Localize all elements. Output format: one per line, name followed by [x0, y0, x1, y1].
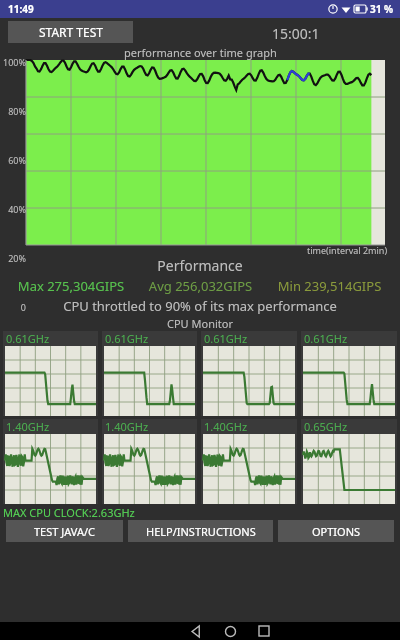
staticText: 0.61GHz [204, 331, 248, 346]
button[interactable]: HELP/INSTRUCTIONS [128, 520, 273, 542]
staticText: HELP/INSTRUCTIONS [146, 524, 256, 539]
staticText: 15:00:1 [272, 24, 320, 43]
staticText: START TEST [39, 24, 103, 40]
staticText: time(interval 2min) [307, 244, 388, 256]
button[interactable]: TEST JAVA/C [6, 520, 123, 542]
staticText: 80% [2, 105, 26, 117]
staticText: 1.40GHz [105, 419, 149, 434]
staticText: CPU Monitor [167, 316, 233, 331]
staticText: performance over time graph [124, 45, 277, 60]
staticText: 31 % [370, 2, 394, 16]
staticText: 0.61GHz [6, 331, 50, 346]
staticText: MAX CPU CLOCK:2.63GHz [3, 505, 135, 520]
button[interactable]: START TEST [8, 21, 133, 43]
staticText: 60% [2, 154, 26, 166]
staticText: 0 [2, 301, 26, 313]
staticText: TEST JAVA/C [34, 524, 96, 539]
staticText: Performance [0, 256, 400, 275]
staticText: CPU throttled to 90% of its max performa… [0, 297, 400, 315]
staticText: Avg 256,032GIPS [136, 277, 265, 295]
button[interactable]: Recents [247, 622, 281, 640]
staticText: Max 275,304GIPS [6, 277, 136, 295]
staticText: 40% [2, 203, 26, 215]
button[interactable]: Home [213, 622, 247, 640]
button[interactable]: OPTIONS [278, 520, 394, 542]
staticText: 100% [2, 56, 26, 68]
staticText: OPTIONS [312, 524, 361, 539]
staticText: Min 239,514GIPS [265, 277, 394, 295]
staticText: 11:49 [8, 2, 34, 16]
staticText: 1.40GHz [204, 419, 248, 434]
button[interactable]: Back [179, 622, 213, 640]
staticText: 0.65GHz [304, 419, 348, 434]
staticText: 1.40GHz [6, 419, 50, 434]
staticText: 20% [2, 252, 26, 264]
staticText: 0.61GHz [304, 331, 348, 346]
staticText: 0.61GHz [105, 331, 149, 346]
